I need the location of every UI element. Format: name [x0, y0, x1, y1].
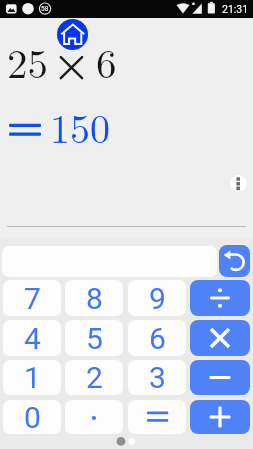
staticText: 9: [149, 281, 166, 316]
staticText: 6: [96, 32, 117, 90]
staticText: 58: [41, 5, 49, 13]
staticText: 3: [149, 360, 166, 395]
button[interactable]: 4: [3, 320, 61, 356]
button[interactable]: 3: [128, 360, 186, 395]
button[interactable]: 6: [128, 320, 186, 356]
button[interactable]: [128, 400, 186, 434]
button[interactable]: 1: [3, 360, 61, 395]
staticText: 6: [149, 321, 166, 356]
staticText: 2: [86, 360, 103, 395]
button[interactable]: 7: [3, 280, 61, 316]
button[interactable]: [65, 400, 123, 434]
button[interactable]: [190, 400, 250, 434]
staticText: 0: [24, 400, 41, 434]
staticText: 4: [24, 321, 41, 356]
staticText: 5: [86, 321, 103, 356]
button[interactable]: [57, 19, 88, 50]
staticText: 150: [50, 98, 110, 155]
button[interactable]: [190, 360, 250, 395]
staticText: 21:31: [222, 3, 249, 15]
staticText: 8: [86, 281, 103, 316]
staticText: 25: [7, 32, 48, 90]
button[interactable]: 0: [3, 400, 61, 434]
staticText: 7: [24, 281, 41, 316]
button[interactable]: 2: [65, 360, 123, 395]
button[interactable]: 9: [128, 280, 186, 316]
button[interactable]: 8: [65, 280, 123, 316]
staticText: 1: [24, 360, 41, 395]
button[interactable]: 5: [65, 320, 123, 356]
button[interactable]: [190, 320, 250, 356]
button[interactable]: [219, 245, 250, 277]
button[interactable]: [190, 280, 250, 316]
button[interactable]: [230, 175, 247, 192]
